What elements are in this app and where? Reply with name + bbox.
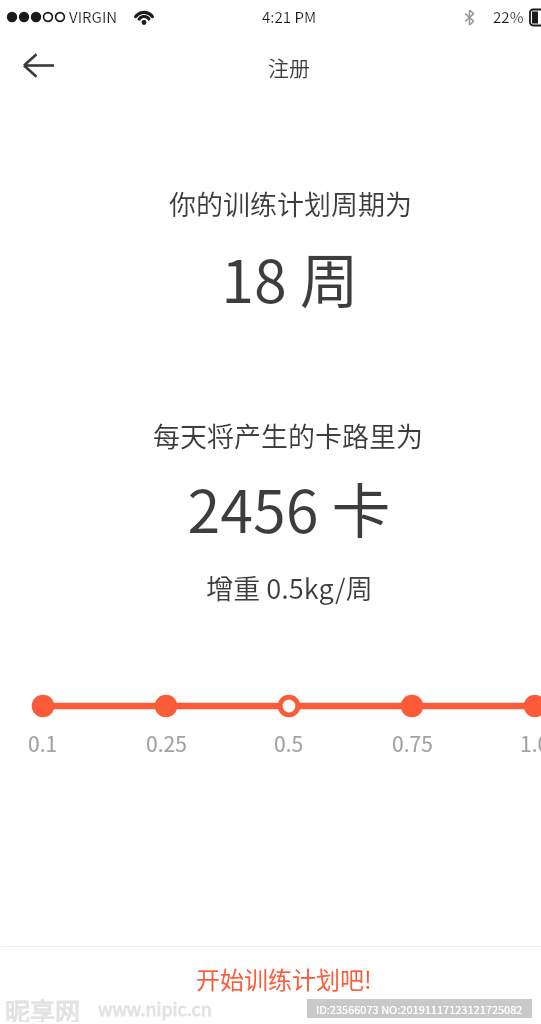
staticText: 18 周 [221, 235, 359, 320]
button[interactable] [1, 660, 541, 760]
staticText: 1.0 [520, 728, 541, 758]
staticText: 0.25 [146, 728, 187, 758]
button[interactable]: 开始训练计划吧! [0, 953, 541, 1003]
staticText: 每天将产生的卡路里为 [153, 416, 423, 455]
staticText: VIRGIN [69, 6, 118, 28]
staticText: 0.1 [28, 728, 58, 758]
staticText: 昵享网 [5, 992, 81, 1022]
staticText: 开始训练计划吧! [196, 961, 372, 996]
staticText: 22% [493, 6, 524, 28]
staticText: 增重 0.5kg/周 [206, 568, 373, 607]
button[interactable] [7, 48, 71, 84]
staticText: 你的训练计划周期为 [169, 184, 412, 223]
staticText: 2456 卡 [187, 465, 391, 550]
staticText: 4:21 PM [262, 6, 317, 28]
staticText: 注册 [268, 52, 310, 82]
staticText: ID:23566073 NO:20191117123121725082 [316, 1001, 523, 1017]
staticText: 0.5 [274, 728, 304, 758]
staticText: www.nipic.cn [98, 995, 212, 1021]
staticText: 0.75 [392, 728, 433, 758]
